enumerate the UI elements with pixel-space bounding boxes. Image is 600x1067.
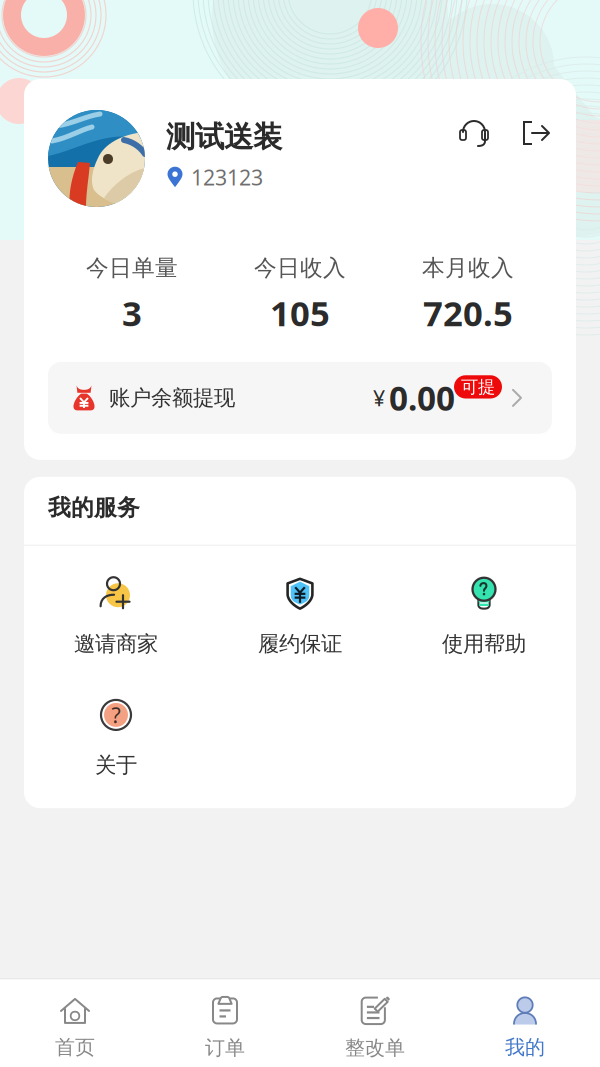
staticText: 测试送装 [166,119,282,155]
staticText: 720.5 [423,290,513,336]
staticText: 邀请商家 [74,631,158,657]
button[interactable]: 客服 [458,117,490,149]
staticText: 本月收入 [422,254,514,282]
button[interactable]: 订单 [150,979,300,1067]
staticText: 订单 [205,1035,245,1060]
staticText: 105 [270,290,330,336]
staticText: 账户余额提现 [109,385,235,411]
staticText: 我的服务 [48,494,140,522]
staticText: 今日单量 [86,254,178,282]
staticText: ? [111,701,120,729]
staticText: 0.00 [389,376,455,420]
button[interactable]: 履约保证 [208,576,392,657]
button[interactable]: 整改单 [300,979,450,1067]
button[interactable]: 账户余额提现 [48,362,552,434]
staticText: 使用帮助 [442,631,526,657]
button[interactable]: ? [24,697,208,778]
staticText: 我的 [505,1035,545,1059]
staticText: 履约保证 [258,631,342,657]
button[interactable]: 退出登录 [520,117,552,149]
staticText: 今日收入 [254,254,346,282]
staticText: 整改单 [345,1035,405,1060]
button[interactable]: 邀请商家 [24,576,208,657]
staticText: 关于 [95,752,137,778]
staticText: 首页 [55,1035,95,1059]
button[interactable]: 首页 [0,980,150,1066]
staticText: ¥ [373,384,385,412]
button[interactable]: 使用帮助 [392,576,576,657]
button[interactable]: 我的 [450,980,600,1066]
staticText: 可提 [461,376,495,397]
staticText: 3 [122,290,142,336]
staticText: 123123 [191,163,263,191]
